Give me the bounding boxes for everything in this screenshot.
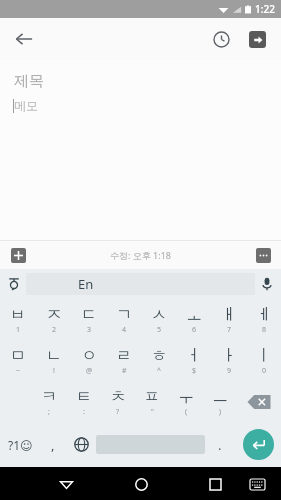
button[interactable]: Language bbox=[0, 269, 28, 299]
button[interactable]: Reminder bbox=[205, 23, 237, 55]
staticText: ) bbox=[219, 407, 222, 417]
button[interactable]: ㅜ bbox=[169, 381, 203, 422]
staticText: ㅣ bbox=[256, 346, 272, 366]
button[interactable]: ㅣ bbox=[246, 340, 281, 381]
staticText: 9 bbox=[227, 366, 232, 376]
button[interactable]: 메모 bbox=[13, 98, 281, 113]
staticText: 2 bbox=[52, 325, 57, 335]
staticText: ㄹ bbox=[116, 346, 132, 366]
staticText: ㅍ bbox=[144, 387, 160, 407]
staticText: ㄱ bbox=[116, 305, 132, 325]
staticText: 6 bbox=[192, 325, 197, 335]
staticText: : bbox=[83, 407, 85, 417]
button[interactable]: ㅈ bbox=[36, 299, 71, 340]
button[interactable]: More options bbox=[251, 243, 275, 267]
button[interactable]: , bbox=[40, 422, 66, 467]
button[interactable]: Backspace bbox=[237, 381, 281, 422]
staticText: @ bbox=[86, 366, 93, 376]
staticText: 3 bbox=[87, 325, 92, 335]
button[interactable]: ㄱ bbox=[106, 299, 141, 340]
button[interactable]: Enter bbox=[243, 429, 274, 460]
staticText: ㅇ bbox=[81, 346, 97, 366]
button[interactable]: Keyboard active bbox=[245, 472, 269, 496]
button[interactable]: . bbox=[205, 422, 235, 467]
staticText: ㅈ bbox=[46, 305, 62, 325]
staticText: $ bbox=[192, 366, 197, 376]
staticText: ㅏ bbox=[221, 346, 237, 366]
button[interactable]: Add bbox=[6, 243, 30, 267]
button[interactable]: ㅎ bbox=[141, 340, 176, 381]
button[interactable]: Home bbox=[127, 470, 155, 498]
staticText: # bbox=[122, 366, 127, 376]
staticText: ㅂ bbox=[10, 305, 26, 325]
button[interactable]: ㅓ bbox=[176, 340, 211, 381]
button[interactable]: ㅇ bbox=[71, 340, 106, 381]
staticText: ~ bbox=[16, 366, 21, 376]
staticText: ㅎ bbox=[151, 346, 167, 366]
button[interactable]: ㅌ bbox=[66, 381, 101, 422]
button[interactable]: ㄷ bbox=[71, 299, 106, 340]
staticText: 0 bbox=[262, 366, 267, 376]
staticText: ㅗ bbox=[186, 305, 202, 325]
staticText: ㄷ bbox=[81, 305, 97, 325]
button[interactable]: ㄴ bbox=[36, 340, 71, 381]
staticText: ㅌ bbox=[76, 387, 92, 407]
staticText: ( bbox=[185, 407, 188, 417]
staticText: ㅡ bbox=[212, 387, 228, 407]
staticText: 수정: 오후 1:18 bbox=[110, 249, 171, 261]
staticText: ; bbox=[48, 407, 50, 417]
staticText: ㅊ bbox=[110, 387, 126, 407]
button[interactable]: ㅁ bbox=[0, 340, 36, 381]
staticText: ! bbox=[53, 366, 55, 376]
staticText: ^ bbox=[157, 366, 162, 376]
staticText: ㄴ bbox=[46, 346, 62, 366]
button[interactable]: ㅊ bbox=[101, 381, 135, 422]
staticText: ㅅ bbox=[151, 305, 167, 325]
staticText: 7 bbox=[227, 325, 232, 335]
button[interactable]: Recents bbox=[201, 470, 229, 498]
button[interactable]: Pin note bbox=[241, 23, 273, 55]
staticText: 제목 bbox=[14, 72, 44, 91]
button[interactable]: Hide keyboard bbox=[52, 470, 80, 498]
button[interactable]: ㅏ bbox=[211, 340, 246, 381]
staticText: ㅁ bbox=[10, 346, 26, 366]
button[interactable]: ㄹ bbox=[106, 340, 141, 381]
button[interactable]: ㅡ bbox=[203, 381, 237, 422]
button[interactable]: Voice input bbox=[253, 269, 281, 299]
staticText: 메모 bbox=[14, 98, 38, 113]
staticText: ㅓ bbox=[186, 346, 202, 366]
staticText: . bbox=[218, 436, 222, 454]
button[interactable]: ㅐ bbox=[211, 299, 246, 340]
staticText: ㅔ bbox=[256, 305, 272, 325]
staticText: 1 bbox=[16, 325, 21, 335]
button[interactable]: ㅗ bbox=[176, 299, 211, 340]
staticText: " bbox=[151, 407, 154, 417]
staticText: , bbox=[51, 436, 55, 454]
staticText: ㅜ bbox=[178, 387, 194, 407]
button[interactable]: ?1☺ bbox=[0, 422, 40, 467]
staticText: 1:22 bbox=[255, 2, 275, 16]
staticText: 8 bbox=[262, 325, 267, 335]
staticText: 5 bbox=[157, 325, 162, 335]
button[interactable]: ㅔ bbox=[246, 299, 281, 340]
staticText: 4 bbox=[122, 325, 127, 335]
button[interactable]: ㅂ bbox=[0, 299, 36, 340]
staticText: ㅐ bbox=[221, 305, 237, 325]
button[interactable]: Switch keyboard bbox=[66, 422, 96, 467]
staticText: ㅋ bbox=[41, 387, 57, 407]
button[interactable]: ㅋ bbox=[31, 381, 66, 422]
button[interactable]: Back bbox=[8, 23, 40, 55]
button[interactable]: ㅍ bbox=[135, 381, 169, 422]
staticText: En bbox=[78, 275, 94, 293]
button[interactable]: 제목 bbox=[14, 72, 281, 91]
staticText: ? bbox=[116, 407, 120, 417]
button[interactable]: ㅅ bbox=[141, 299, 176, 340]
staticText: ?1☺ bbox=[8, 437, 33, 453]
